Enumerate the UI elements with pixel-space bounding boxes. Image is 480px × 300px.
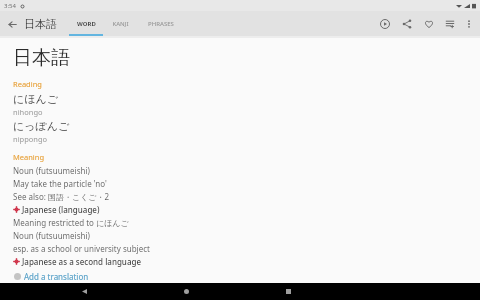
button[interactable]: Back xyxy=(0,12,24,36)
staticText: にほんご xyxy=(13,92,59,106)
button[interactable]: PHRASES xyxy=(137,11,185,36)
button[interactable]: More options xyxy=(460,15,478,33)
button[interactable]: Play xyxy=(374,13,396,35)
button[interactable]: Favorite xyxy=(418,13,440,35)
button[interactable]: WORD xyxy=(69,11,103,36)
staticText: Add a translation xyxy=(24,271,89,282)
staticText: esp. as a school or university subject xyxy=(13,243,150,254)
staticText: Reading xyxy=(13,79,42,89)
staticText: にっぽんご xyxy=(13,119,70,133)
staticText: nihongo xyxy=(13,107,43,117)
button[interactable]: Recents xyxy=(279,283,297,300)
staticText: nippongo xyxy=(13,134,48,144)
button[interactable]: Back xyxy=(75,283,93,300)
staticText: May take the particle 'no' xyxy=(13,178,107,189)
staticText: Noun (futsuumeishi) xyxy=(13,230,90,241)
staticText: Meaning restricted to にほんご xyxy=(13,217,129,228)
button[interactable]: Home xyxy=(177,283,195,300)
staticText: Noun (futsuumeishi) xyxy=(13,165,90,176)
staticText: KANJI xyxy=(112,20,129,28)
staticText: PHRASES xyxy=(148,20,174,28)
staticText: See also: 国語・こくご・2 xyxy=(13,191,110,202)
staticText: 3:54 xyxy=(4,2,16,10)
staticText: 日本語 xyxy=(24,17,57,31)
button[interactable]: Share xyxy=(396,13,418,35)
button[interactable]: Add a translation xyxy=(13,270,90,283)
button[interactable]: Add to list xyxy=(440,14,460,34)
staticText: Japanese (language) xyxy=(22,204,100,215)
staticText: 日本語 xyxy=(13,46,70,70)
button[interactable]: KANJI xyxy=(103,11,137,36)
staticText: WORD xyxy=(77,20,96,28)
staticText: Japanese as a second language xyxy=(22,256,142,267)
staticText: Meaning xyxy=(13,152,45,162)
